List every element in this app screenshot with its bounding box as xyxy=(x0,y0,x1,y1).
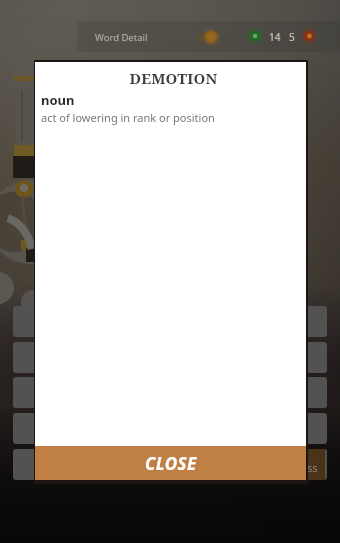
button[interactable]: CLOSE xyxy=(35,446,306,480)
button[interactable] xyxy=(13,306,327,337)
button[interactable] xyxy=(13,377,327,408)
staticText: 5 xyxy=(289,30,295,44)
staticText: DEMOTION xyxy=(38,68,309,88)
staticText: Word Detail xyxy=(95,31,148,44)
staticText: ss xyxy=(307,460,318,475)
button[interactable]: Word Detail xyxy=(77,21,340,52)
button[interactable] xyxy=(13,342,327,373)
button[interactable]: ss xyxy=(13,449,327,480)
staticText: noun xyxy=(41,91,75,109)
staticText: 14 xyxy=(269,30,281,44)
button[interactable] xyxy=(13,413,327,444)
staticText: CLOSE xyxy=(145,452,197,475)
staticText: act of lowering in rank or position xyxy=(41,110,215,125)
